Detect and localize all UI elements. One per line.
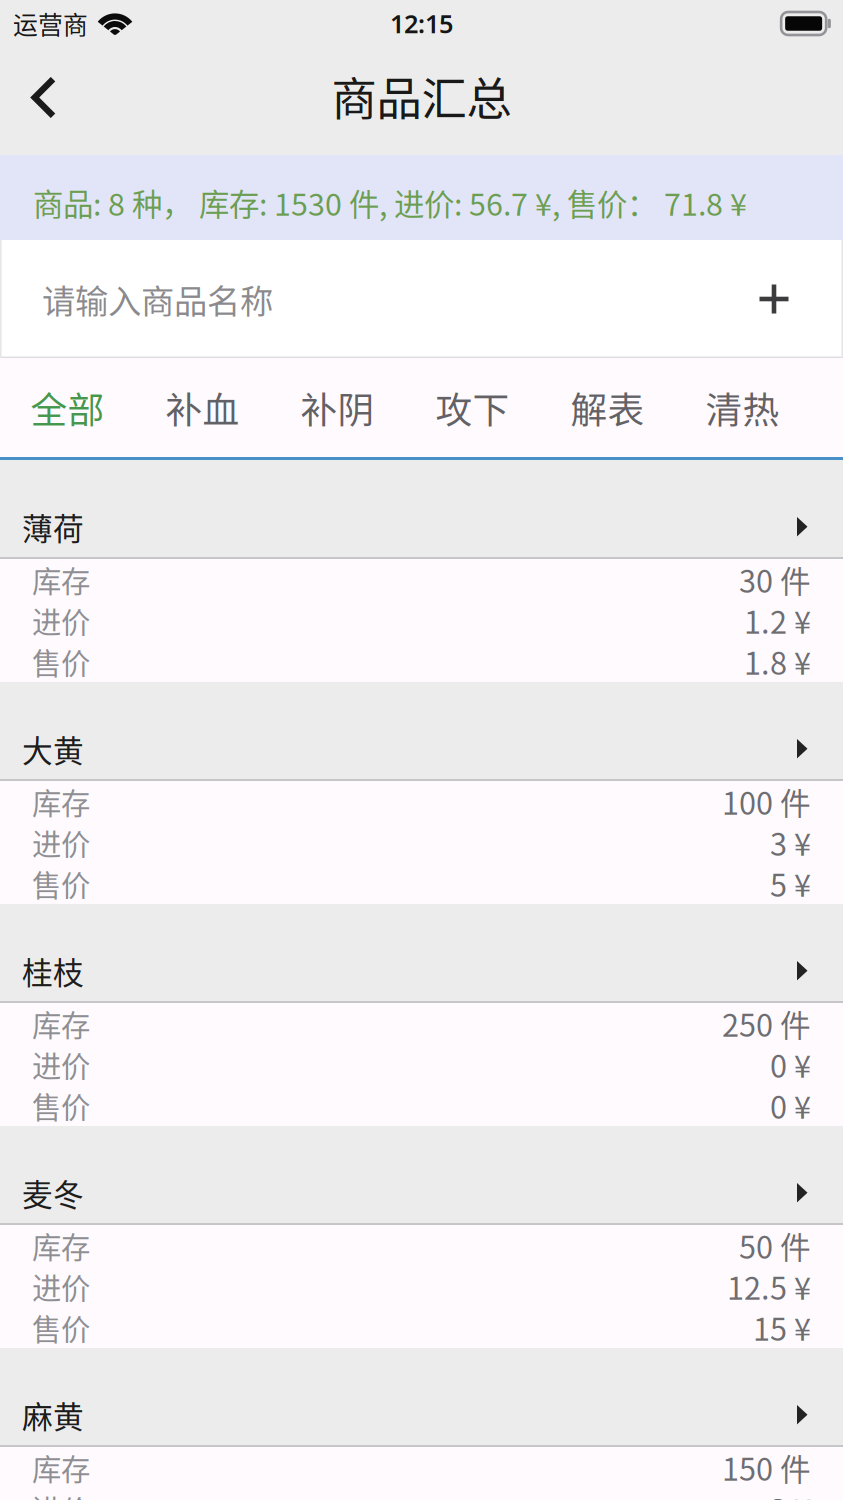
staticText: 1.8 ¥ xyxy=(744,639,811,684)
staticText: 商品汇总 xyxy=(331,63,511,129)
staticText: 麻黄 xyxy=(22,1393,84,1437)
staticText: 桂枝 xyxy=(22,949,84,993)
button[interactable]: 桂枝 xyxy=(0,904,843,1001)
staticText: 大黄 xyxy=(22,727,84,771)
staticText: 3 ¥ xyxy=(770,820,811,865)
staticText: 进价 xyxy=(32,1043,90,1086)
button[interactable]: 添加商品 xyxy=(738,240,810,358)
staticText: 1.2 ¥ xyxy=(744,598,811,643)
button[interactable]: 清热 xyxy=(675,358,810,457)
button[interactable]: 攻下 xyxy=(405,358,540,457)
staticText: 15 ¥ xyxy=(753,1305,811,1350)
staticText: 售价 xyxy=(32,1084,90,1127)
button[interactable]: 薄荷 xyxy=(0,460,843,557)
staticText: 5 ¥ xyxy=(770,861,811,906)
staticText: 清热 xyxy=(705,381,779,434)
staticText: 薄荷 xyxy=(22,505,84,549)
button[interactable]: 补阴 xyxy=(270,358,405,457)
staticText: 补阴 xyxy=(300,381,374,434)
staticText: 0 ¥ xyxy=(770,1042,811,1087)
staticText: 售价 xyxy=(32,640,90,683)
staticText: 商品: 8 种， 库存: 1530 件, 进价: 56.7 ¥, 售价： 71.… xyxy=(33,180,747,224)
staticText: 进价 xyxy=(32,1265,90,1308)
staticText: 12:15 xyxy=(390,7,453,40)
staticText: 2 ¥ xyxy=(770,1486,811,1500)
staticText: 进价 xyxy=(32,1487,90,1500)
staticText: 售价 xyxy=(32,1306,90,1349)
staticText: 12.5 ¥ xyxy=(727,1264,811,1309)
button[interactable]: 全部 xyxy=(0,358,135,457)
staticText: 库存 xyxy=(32,558,90,601)
staticText: 麦冬 xyxy=(22,1171,84,1215)
staticText: 进价 xyxy=(32,821,90,864)
staticText: 50 件 xyxy=(739,1223,811,1268)
staticText: 0 ¥ xyxy=(770,1083,811,1128)
button[interactable]: 麻黄 xyxy=(0,1348,843,1445)
staticText: 库存 xyxy=(32,1446,90,1489)
button[interactable]: 大黄 xyxy=(0,682,843,779)
staticText: 解表 xyxy=(570,381,644,434)
button[interactable]: 麦冬 xyxy=(0,1126,843,1223)
button[interactable]: 补血 xyxy=(135,358,270,457)
staticText: 请输入商品名称 xyxy=(42,275,273,323)
staticText: 库存 xyxy=(32,1224,90,1267)
staticText: 运营商 xyxy=(13,5,88,41)
staticText: 库存 xyxy=(32,1002,90,1045)
staticText: 30 件 xyxy=(739,557,811,602)
button[interactable]: 返回 xyxy=(0,47,88,155)
staticText: 全部 xyxy=(30,381,104,434)
staticText: 250 件 xyxy=(722,1001,811,1046)
staticText: 进价 xyxy=(32,599,90,642)
staticText: 补血 xyxy=(165,381,239,434)
button[interactable]: 解表 xyxy=(540,358,675,457)
staticText: 库存 xyxy=(32,780,90,823)
staticText: 150 件 xyxy=(722,1445,811,1490)
staticText: 攻下 xyxy=(435,381,509,434)
staticText: 100 件 xyxy=(722,779,811,824)
staticText: 售价 xyxy=(32,862,90,905)
